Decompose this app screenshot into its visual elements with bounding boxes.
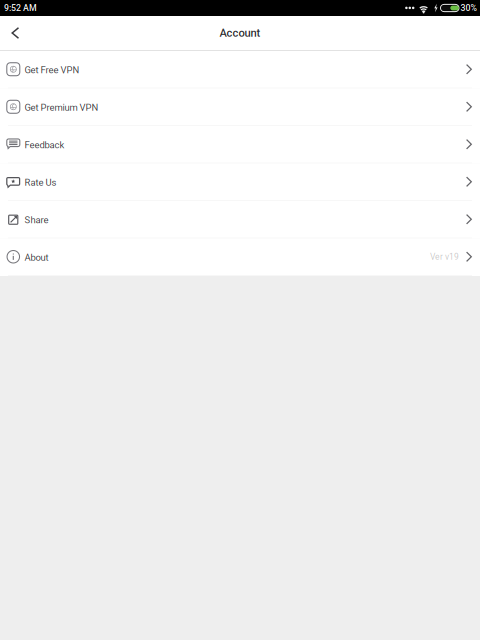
staticText: Rate Us bbox=[24, 177, 56, 188]
button[interactable]: Share bbox=[0, 201, 480, 238]
staticText: Get Premium VPN bbox=[24, 102, 98, 113]
staticText: Get Free VPN bbox=[24, 64, 79, 76]
staticText: Account bbox=[219, 26, 260, 39]
button[interactable]: About bbox=[0, 238, 480, 276]
staticText: Feedback bbox=[24, 139, 64, 151]
staticText: About bbox=[24, 252, 48, 263]
button[interactable]: Back bbox=[0, 16, 30, 50]
button[interactable]: Get Free VPN bbox=[0, 51, 480, 88]
button[interactable]: Feedback bbox=[0, 126, 480, 163]
staticText: Share bbox=[24, 214, 48, 226]
button[interactable]: Rate Us bbox=[0, 163, 480, 201]
staticText: 9:52 AM bbox=[4, 3, 37, 13]
button[interactable]: Get Premium VPN bbox=[0, 88, 480, 126]
staticText: Ver v19 bbox=[430, 252, 459, 262]
staticText: 30% bbox=[461, 3, 477, 13]
